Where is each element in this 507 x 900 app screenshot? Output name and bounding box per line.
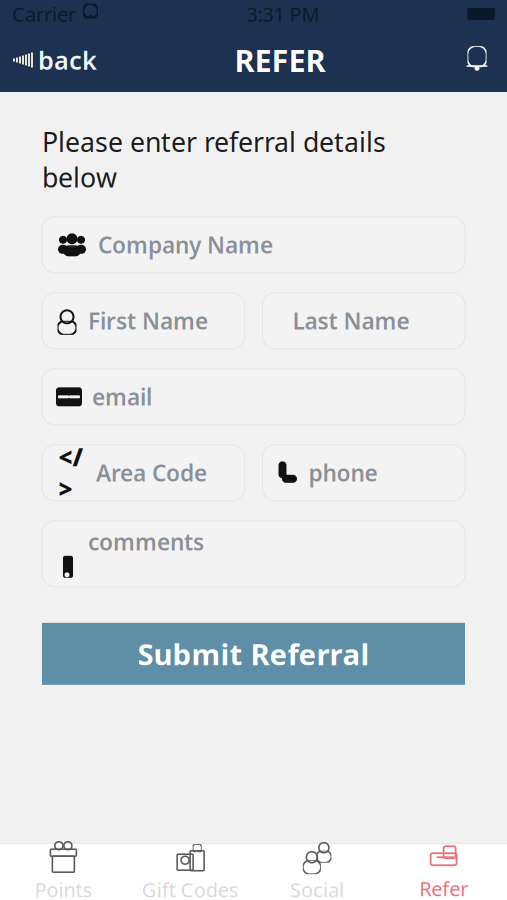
button[interactable]: email <box>42 369 465 425</box>
button[interactable]: Refer <box>380 843 507 900</box>
button[interactable]: Last Name <box>262 293 465 349</box>
staticText: 3:31 PM <box>246 1 319 27</box>
staticText: Submit Referral <box>137 634 369 673</box>
button[interactable]: </> <box>42 445 244 501</box>
button[interactable]: First Name <box>42 293 244 349</box>
button[interactable]: comments <box>42 521 465 587</box>
button[interactable]: Gift Codes <box>127 843 254 900</box>
staticText: Company Name <box>98 230 273 260</box>
staticText: First Name <box>88 306 208 336</box>
staticText: Area Code <box>96 458 207 488</box>
staticText: Gift Codes <box>142 876 239 900</box>
button[interactable]: Company Name <box>42 217 465 273</box>
staticText: Carrier <box>12 1 76 27</box>
staticText: </> <box>58 441 83 505</box>
button[interactable]: Submit Referral <box>42 623 465 685</box>
button[interactable]: Points <box>0 843 127 900</box>
staticText: Refer <box>419 875 468 900</box>
staticText: Social <box>290 876 344 900</box>
button[interactable]: phone <box>262 445 465 501</box>
staticText: phone <box>308 458 377 488</box>
button[interactable]: back <box>0 28 113 92</box>
staticText: email <box>92 382 152 412</box>
staticText: back <box>38 43 97 77</box>
staticText: Points <box>34 876 92 900</box>
staticText: Last Name <box>292 306 409 336</box>
staticText: comments <box>88 527 204 557</box>
button[interactable]: Social <box>253 843 380 900</box>
button[interactable]: Notifications <box>447 28 507 92</box>
staticText: REFER <box>234 40 325 80</box>
staticText: Please enter referral details below <box>42 124 386 195</box>
